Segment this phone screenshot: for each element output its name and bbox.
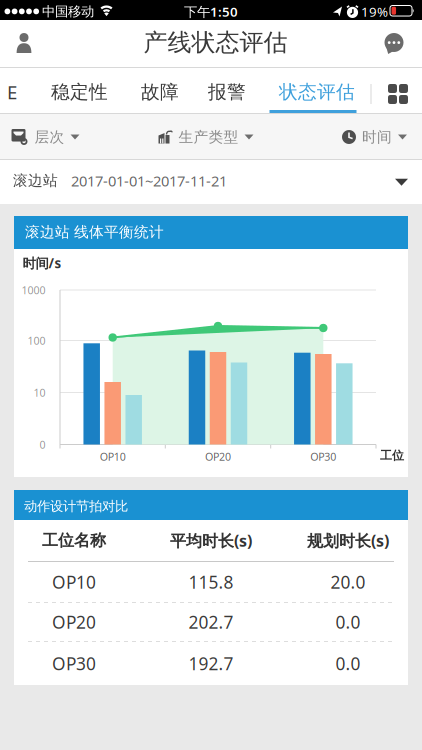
button[interactable]: 报警	[208, 80, 246, 103]
staticText: 平均时长(s)	[170, 530, 252, 551]
staticText: 100	[27, 333, 45, 348]
staticText: 生产类型	[178, 128, 238, 146]
staticText: 滚边站	[13, 172, 58, 190]
staticText: 中国移动	[42, 3, 94, 20]
staticText: OP10	[52, 570, 96, 593]
staticText: 20.0	[330, 570, 365, 593]
staticText: 状态评估	[279, 80, 355, 103]
staticText: 工位名称	[42, 531, 106, 550]
staticText: OP10	[100, 449, 126, 464]
staticText: 动作设计节拍对比	[24, 498, 128, 514]
button[interactable]: 滚边站	[0, 160, 422, 204]
staticText: 故障	[141, 80, 179, 103]
staticText: 滚边站 线体平衡统计	[25, 223, 164, 241]
button[interactable]: 层次	[11, 128, 79, 146]
button[interactable]: 时间	[342, 128, 407, 146]
staticText: OP20	[52, 610, 96, 633]
staticText: OP30	[52, 652, 96, 675]
button[interactable]: 生产类型	[158, 128, 253, 146]
staticText: OP30	[310, 449, 336, 464]
button[interactable]: 故障	[141, 80, 179, 103]
staticText: 稳定性	[51, 80, 108, 103]
staticText: 2017-01-01~2017-11-21	[71, 171, 227, 190]
staticText: 规划时长(s)	[307, 530, 389, 551]
staticText: 1000	[21, 283, 45, 297]
button[interactable]: E	[7, 80, 17, 104]
staticText: E	[7, 80, 17, 104]
staticText: 115.8	[188, 570, 233, 593]
button[interactable]: More tabs	[388, 84, 408, 104]
button[interactable]: 稳定性	[51, 80, 108, 103]
staticText: 产线状态评估	[143, 28, 287, 57]
staticText: 层次	[34, 128, 64, 146]
staticText: 0	[39, 437, 45, 452]
staticText: 0.0	[335, 610, 360, 633]
staticText: 192.7	[188, 652, 233, 675]
button[interactable]: Profile	[14, 33, 34, 54]
staticText: 0.0	[335, 652, 360, 675]
staticText: 202.7	[188, 610, 233, 633]
staticText: 工位	[380, 448, 404, 463]
staticText: OP20	[205, 449, 231, 464]
staticText: 下午1:50	[184, 3, 238, 20]
staticText: 时间/s	[22, 254, 61, 272]
staticText: 时间	[362, 128, 392, 146]
staticText: 10	[33, 385, 45, 400]
button[interactable]: 状态评估	[279, 80, 355, 103]
staticText: 19%	[361, 3, 388, 20]
staticText: 报警	[208, 80, 246, 103]
button[interactable]: Messages	[384, 32, 404, 54]
